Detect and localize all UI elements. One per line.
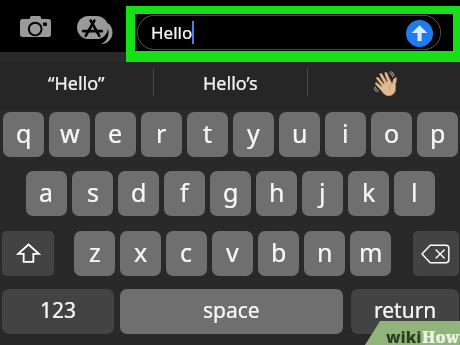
button[interactable]: t	[187, 112, 228, 157]
staticText: return	[374, 296, 437, 325]
staticText: a	[39, 175, 54, 209]
staticText: l	[411, 175, 418, 209]
button[interactable]: f	[164, 171, 205, 216]
button[interactable]: “Hello”	[0, 62, 153, 110]
staticText: h	[269, 175, 285, 209]
button[interactable]: g	[210, 171, 251, 216]
staticText: z	[89, 235, 101, 269]
staticText: wiki	[386, 326, 422, 345]
button[interactable]: h	[256, 171, 297, 216]
button[interactable]: m	[350, 231, 391, 276]
staticText: b	[271, 235, 287, 269]
button[interactable]: q	[3, 112, 44, 157]
button[interactable]: w	[49, 112, 90, 157]
staticText: 👋🏼	[371, 70, 401, 98]
button[interactable]: p	[417, 112, 458, 157]
button[interactable]: i	[325, 112, 366, 157]
staticText: c	[180, 235, 193, 269]
staticText: How	[422, 326, 460, 345]
staticText: t	[203, 116, 213, 150]
button[interactable]: 123	[2, 289, 114, 334]
button[interactable]: Hello	[137, 15, 441, 50]
button[interactable]: Hello’s	[153, 62, 307, 110]
button[interactable]: space	[120, 289, 343, 334]
staticText: k	[362, 175, 376, 209]
staticText: e	[108, 116, 123, 150]
staticText: 123	[40, 296, 77, 325]
staticText: d	[131, 175, 147, 209]
button[interactable]: r	[141, 112, 182, 157]
staticText: “Hello”	[48, 71, 105, 96]
staticText: j	[319, 175, 326, 209]
button[interactable]: Shift	[2, 231, 54, 276]
button[interactable]: a	[26, 171, 67, 216]
staticText: v	[226, 235, 239, 269]
staticText: y	[247, 116, 260, 150]
button[interactable]: k	[348, 171, 389, 216]
staticText: p	[430, 116, 446, 150]
staticText: g	[223, 175, 239, 209]
button[interactable]: y	[233, 112, 274, 157]
staticText: u	[292, 116, 308, 150]
button[interactable]: n	[304, 231, 345, 276]
staticText: s	[87, 175, 99, 209]
button[interactable]: b	[258, 231, 299, 276]
staticText: w	[60, 116, 80, 150]
button[interactable]: Camera	[13, 8, 57, 44]
button[interactable]: s	[72, 171, 113, 216]
staticText: x	[134, 235, 148, 269]
button[interactable]: j	[302, 171, 343, 216]
button[interactable]: 👋🏼	[307, 62, 460, 110]
button[interactable]: v	[212, 231, 253, 276]
staticText: Hello	[151, 21, 193, 44]
staticText: Hello’s	[203, 71, 258, 96]
button[interactable]: z	[74, 231, 115, 276]
button[interactable]: o	[371, 112, 412, 157]
staticText: m	[359, 235, 383, 269]
button[interactable]: x	[120, 231, 161, 276]
staticText: n	[317, 235, 333, 269]
staticText: o	[384, 116, 400, 150]
button[interactable]: u	[279, 112, 320, 157]
staticText: i	[342, 116, 349, 150]
staticText: q	[16, 116, 32, 150]
button[interactable]: Backspace	[413, 231, 459, 276]
button[interactable]: e	[95, 112, 136, 157]
button[interactable]: l	[394, 171, 435, 216]
staticText: r	[156, 116, 167, 150]
staticText: space	[203, 296, 260, 325]
button[interactable]: App Store	[70, 9, 114, 45]
button[interactable]: c	[166, 231, 207, 276]
button[interactable]: d	[118, 171, 159, 216]
staticText: f	[180, 175, 189, 209]
button[interactable]: Send	[406, 20, 433, 47]
button[interactable]: return	[351, 289, 459, 334]
